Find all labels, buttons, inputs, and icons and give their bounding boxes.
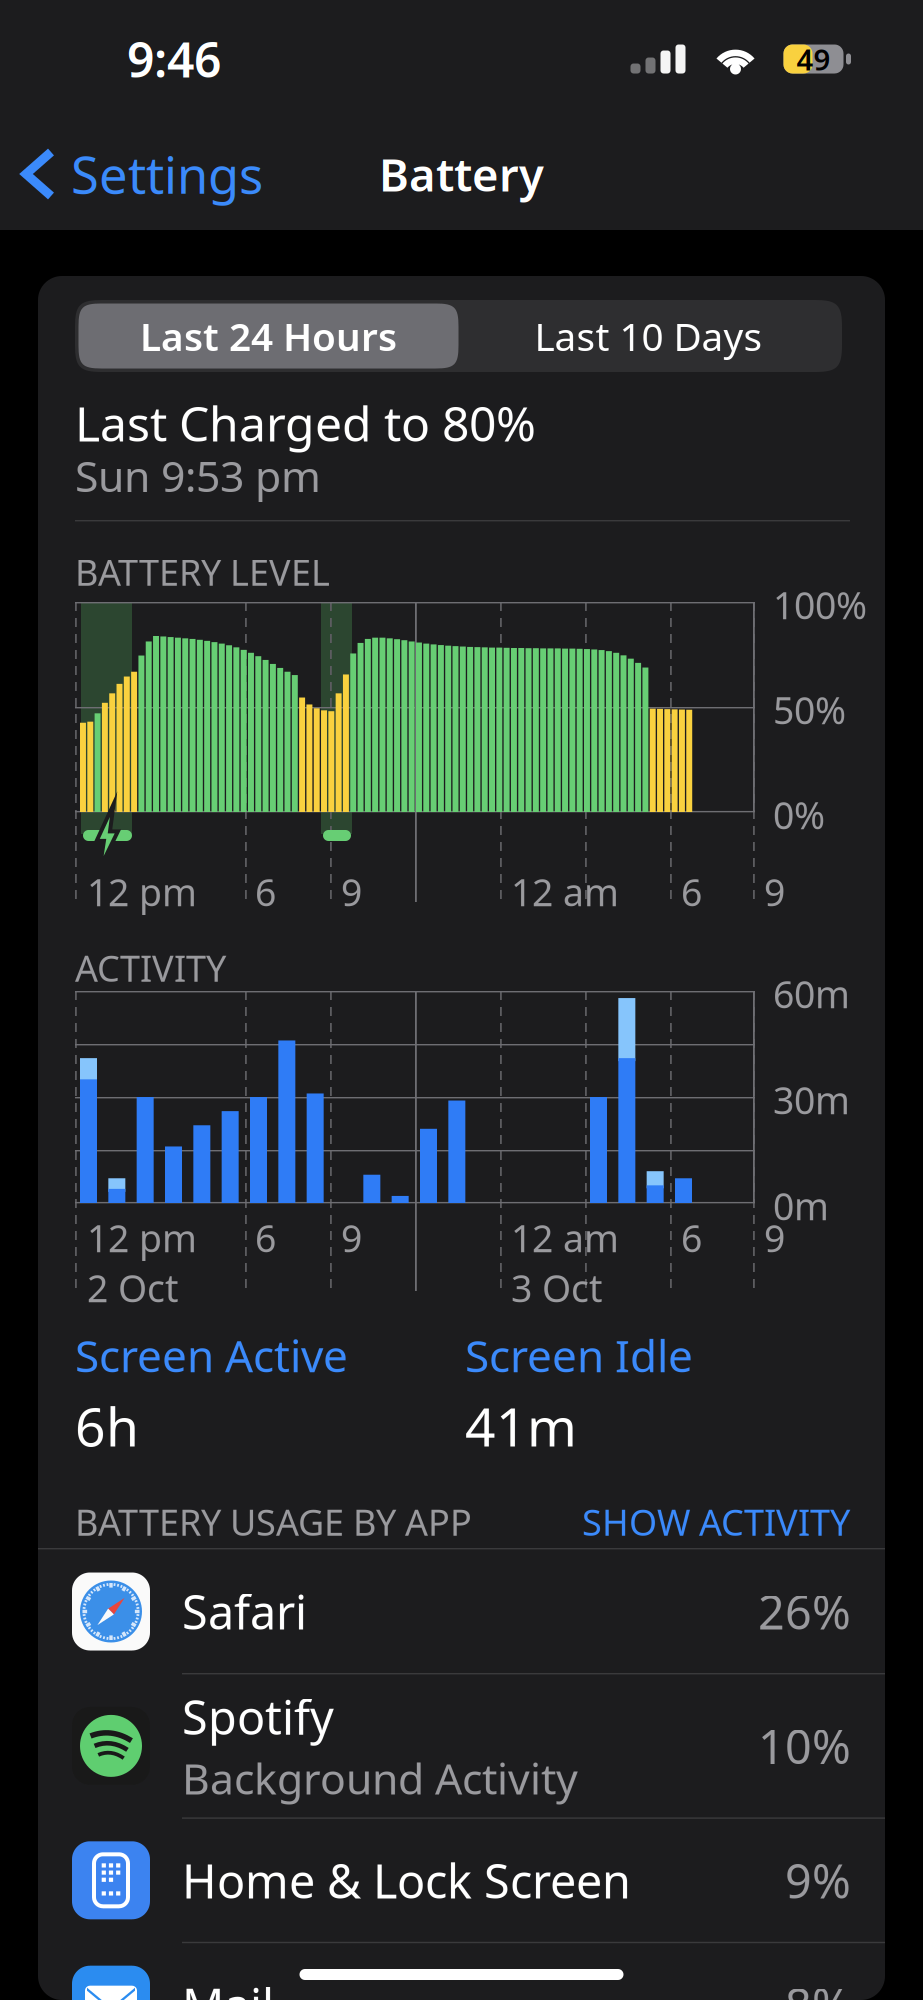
- staticText: 12 pm: [87, 867, 197, 917]
- staticText: Screen Active: [75, 1326, 348, 1384]
- staticText: 9: [341, 1213, 362, 1263]
- staticText: 6h: [75, 1390, 139, 1461]
- staticText: Battery: [379, 144, 544, 204]
- staticText: 0%: [773, 790, 825, 840]
- staticText: 6: [681, 867, 702, 917]
- staticText: SHOW ACTIVITY: [582, 1498, 850, 1546]
- staticText: 41m: [465, 1390, 577, 1461]
- staticText: 30m: [773, 1075, 850, 1125]
- staticText: Background Activity: [182, 1750, 578, 1806]
- button[interactable]: Mail: [38, 1943, 885, 2000]
- staticText: Screen Idle: [465, 1326, 693, 1384]
- staticText: 26%: [758, 1580, 851, 1642]
- staticText: 50%: [773, 685, 846, 735]
- staticText: Spotify: [182, 1686, 334, 1748]
- staticText: 0m: [773, 1181, 829, 1231]
- button[interactable]: Home & Lock Screen: [38, 1819, 885, 1942]
- staticText: Home & Lock Screen: [182, 1849, 631, 1911]
- button[interactable]: Last 10 Days: [458, 303, 838, 368]
- button[interactable]: SHOW ACTIVITY: [582, 1498, 850, 1546]
- staticText: 9: [764, 1213, 785, 1263]
- staticText: 9:46: [127, 27, 221, 91]
- staticText: ACTIVITY: [75, 944, 226, 992]
- button[interactable]: Spotify: [38, 1674, 885, 1817]
- staticText: 100%: [773, 580, 867, 630]
- staticText: 49: [796, 39, 830, 78]
- staticText: 2 Oct: [87, 1263, 178, 1313]
- staticText: 60m: [773, 969, 850, 1019]
- staticText: BATTERY LEVEL: [75, 548, 330, 596]
- staticText: 10%: [758, 1715, 851, 1777]
- staticText: 6: [255, 867, 276, 917]
- staticText: 12 pm: [87, 1213, 197, 1263]
- staticText: 6: [255, 1213, 276, 1263]
- button[interactable]: Safari: [38, 1550, 885, 1673]
- staticText: 9%: [785, 1849, 851, 1911]
- staticText: Settings: [71, 140, 263, 208]
- staticText: Safari: [182, 1580, 307, 1642]
- staticText: 12 am: [511, 867, 619, 917]
- staticText: Last 24 Hours: [140, 310, 397, 362]
- staticText: Sun 9:53 pm: [75, 447, 321, 504]
- staticText: 3 Oct: [511, 1263, 602, 1313]
- staticText: 12 am: [511, 1213, 619, 1263]
- staticText: 8%: [785, 1974, 851, 2000]
- staticText: Last Charged to 80%: [75, 391, 536, 455]
- button[interactable]: Settings: [0, 126, 281, 222]
- button[interactable]: Last 24 Hours: [78, 303, 458, 368]
- staticText: BATTERY USAGE BY APP: [75, 1498, 472, 1546]
- staticText: Mail: [182, 1974, 274, 2000]
- staticText: 6: [681, 1213, 702, 1263]
- staticText: Last 10 Days: [534, 310, 762, 362]
- staticText: 9: [341, 867, 362, 917]
- staticText: 9: [764, 867, 785, 917]
